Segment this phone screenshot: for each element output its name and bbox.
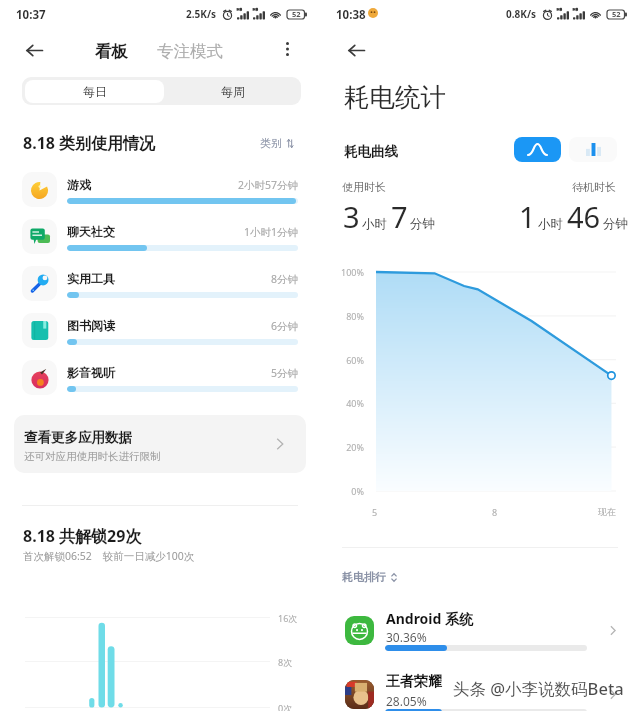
staticText: 现在 [598,506,616,517]
staticText: 待机时长 [516,180,616,194]
staticText: 使用时长 [342,180,386,194]
staticText: 8 [492,506,498,518]
staticText: 40% [330,397,364,409]
staticText: 游戏 [67,177,91,192]
button[interactable]: 每日 [25,80,164,103]
staticText: 1 [519,197,536,236]
staticText: 16次 [278,612,298,624]
staticText: 耗电统计 [344,81,446,113]
button[interactable]: 每周 [164,80,301,103]
staticText: 8.18 类别使用情况 [23,132,156,154]
staticText: 类别 [260,136,282,150]
button[interactable]: 影音视听 [0,354,320,400]
staticText: 46 [567,197,601,236]
staticText: 8.18 共解锁29次 [23,525,142,547]
button[interactable]: 图书阅读 [0,307,320,353]
button[interactable]: 游戏 [0,166,320,212]
staticText: 还可对应用使用时长进行限制 [24,450,161,463]
button[interactable]: Back [342,36,370,64]
button[interactable]: 实用工具 [0,260,320,306]
button[interactable]: 聊天社交 [0,213,320,259]
staticText: 28.05% [386,693,427,709]
button[interactable]: 看板 [95,41,128,62]
staticText: 0次 [278,702,293,711]
staticText: 80% [330,310,364,322]
staticText: 8分钟 [178,272,298,286]
staticText: 100% [330,266,364,278]
staticText: 5 [372,506,378,518]
staticText: Android 系统 [386,609,474,628]
staticText: 0.8K/s [506,7,537,21]
staticText: 2小时57分钟 [178,178,298,192]
staticText: 实用工具 [67,271,115,286]
staticText: 10:37 [16,7,46,23]
button[interactable]: 类别 [260,136,293,150]
staticText: 1小时1分钟 [178,225,298,239]
staticText: 图书阅读 [67,318,115,333]
staticText: 小时 [362,216,387,232]
staticText: 分钟 [603,216,628,232]
staticText: 3 [343,197,360,236]
button[interactable]: Bar chart [569,137,617,162]
staticText: 首次解锁06:52 较前一日减少100次 [23,549,195,563]
staticText: 2.5K/s [186,7,217,21]
staticText: 每日 [83,84,107,99]
button[interactable]: Curve chart [514,137,561,162]
staticText: 头条 @小李说数码Beta [453,677,624,700]
button[interactable]: More options [274,36,300,62]
button[interactable]: 专注模式 [157,41,223,62]
staticText: 分钟 [410,216,435,232]
button[interactable]: Back [20,36,48,64]
button[interactable]: 查看更多应用数据 [14,415,306,473]
staticText: 8次 [278,656,293,668]
staticText: 60% [330,354,364,366]
staticText: 查看更多应用数据 [24,429,132,446]
staticText: 0% [330,485,364,497]
staticText: 王者荣耀 [386,673,442,691]
staticText: 52 [612,9,621,19]
staticText: 5分钟 [178,366,298,380]
staticText: 聊天社交 [67,224,115,239]
staticText: 7 [391,197,408,236]
button[interactable]: 耗电排行 [342,570,398,584]
staticText: 10:38 [336,7,366,23]
staticText: 30.36% [386,629,427,645]
staticText: 20% [330,441,364,453]
staticText: 52 [292,9,301,19]
staticText: 6分钟 [178,319,298,333]
staticText: 耗电曲线 [344,143,398,160]
staticText: 耗电排行 [342,570,386,584]
staticText: 每周 [221,84,245,99]
staticText: 小时 [538,216,563,232]
staticText: 影音视听 [67,365,115,380]
button[interactable]: Android 系统 [320,606,640,662]
button[interactable]: 王者荣耀 [320,670,640,711]
